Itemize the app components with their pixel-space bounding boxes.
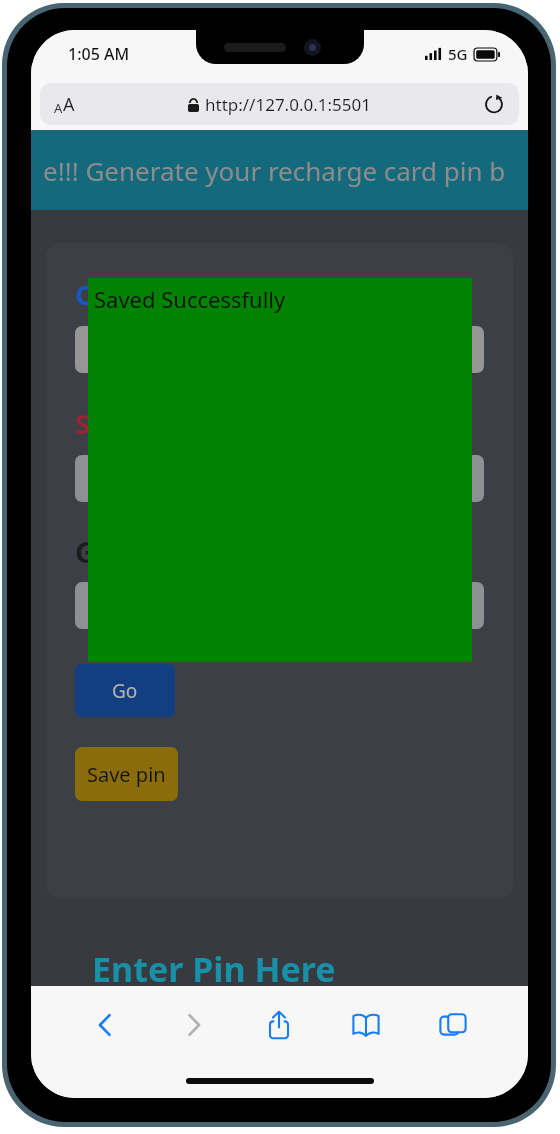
staticText: Go: [112, 678, 138, 704]
staticText: 1:05 AM: [68, 43, 130, 65]
staticText: Generate: [75, 532, 210, 571]
button[interactable]: GLO: [75, 326, 484, 373]
button[interactable]: Share: [253, 999, 305, 1051]
button[interactable]: Bookmarks: [340, 999, 392, 1051]
button[interactable]: Text size: [40, 83, 519, 125]
button[interactable]: Text size: [54, 92, 75, 117]
button[interactable]: Go: [75, 664, 175, 717]
staticText: 5G: [448, 44, 468, 64]
staticText: Enter Pin Here: [92, 946, 336, 986]
button[interactable]: Tabs: [427, 999, 479, 1051]
button[interactable]: Save pin: [75, 747, 178, 801]
button[interactable]: 100: [75, 455, 484, 502]
staticText: http://127.0.0.1:5501: [205, 93, 371, 116]
staticText: A: [63, 92, 75, 117]
button[interactable]: 7: [75, 582, 484, 629]
staticText: Choose Network: [75, 276, 299, 313]
staticText: Select Amount: [75, 405, 272, 442]
button[interactable]: Back: [80, 999, 132, 1051]
button[interactable]: Reload: [481, 91, 507, 117]
staticText: Save pin: [87, 761, 166, 788]
button[interactable]: Forward: [167, 999, 219, 1051]
staticText: e!!! Generate your recharge card pin b: [43, 153, 506, 188]
staticText: Saved Successfully: [94, 284, 286, 314]
staticText: A: [54, 99, 63, 117]
